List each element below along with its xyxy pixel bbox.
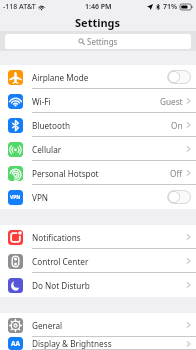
button[interactable]: Personal Hotspot bbox=[0, 161, 196, 185]
button[interactable]: Cellular bbox=[0, 137, 196, 161]
staticText: VPN bbox=[10, 194, 21, 201]
staticText: Guest bbox=[160, 96, 183, 107]
button[interactable]: VPN bbox=[0, 185, 196, 209]
button[interactable]: General bbox=[0, 313, 196, 337]
button[interactable]: AA bbox=[0, 337, 196, 350]
staticText: Off bbox=[170, 168, 183, 179]
staticText: General bbox=[32, 320, 63, 331]
staticText: Settings bbox=[75, 15, 121, 30]
staticText: AA bbox=[11, 339, 20, 348]
button[interactable]: Notifications bbox=[0, 225, 196, 249]
staticText: On bbox=[171, 120, 183, 131]
button[interactable]: Airplane Mode bbox=[0, 65, 196, 89]
button[interactable]: Toggle bbox=[167, 70, 191, 84]
staticText: Display & Brightness bbox=[32, 338, 112, 349]
staticText: Control Center bbox=[32, 256, 89, 267]
button[interactable]: Do Not Disturb bbox=[0, 273, 196, 297]
button[interactable]: Bluetooth bbox=[0, 113, 196, 137]
staticText: 1:46 PM bbox=[85, 2, 112, 12]
button[interactable]: Wi-Fi bbox=[0, 89, 196, 113]
staticText: VPN bbox=[32, 192, 49, 203]
staticText: Settings bbox=[87, 36, 118, 47]
staticText: Personal Hotspot bbox=[32, 168, 99, 179]
button[interactable]: Toggle bbox=[167, 190, 191, 204]
button[interactable]: Control Center bbox=[0, 249, 196, 273]
button[interactable]: Settings bbox=[5, 34, 191, 49]
staticText: Airplane Mode bbox=[32, 72, 89, 83]
staticText: Do Not Disturb bbox=[32, 280, 90, 291]
staticText: Bluetooth bbox=[32, 120, 70, 131]
staticText: 71% bbox=[163, 2, 178, 12]
staticText: Cellular bbox=[32, 144, 62, 155]
staticText: Wi-Fi bbox=[32, 96, 51, 107]
staticText: -118 AT&T bbox=[3, 2, 36, 12]
staticText: Notifications bbox=[32, 232, 81, 243]
